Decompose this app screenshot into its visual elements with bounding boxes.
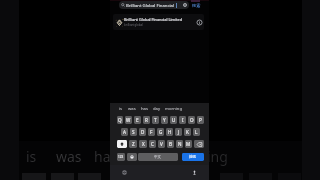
button[interactable]: B	[167, 140, 174, 148]
staticText: is	[119, 106, 123, 112]
button[interactable]: Z	[129, 140, 137, 148]
button[interactable]: morning	[164, 105, 184, 113]
button[interactable]: V	[158, 140, 165, 148]
button[interactable]: 搜索	[182, 153, 204, 161]
staticText: 搜索	[189, 155, 197, 160]
button[interactable]: O	[188, 116, 195, 124]
staticText: R	[145, 117, 148, 123]
staticText: 中文	[154, 155, 162, 160]
staticText: C	[151, 141, 154, 147]
button[interactable]: N	[176, 140, 183, 148]
staticText: A	[123, 129, 126, 135]
staticText: H	[168, 129, 172, 135]
button[interactable]: Shift	[117, 140, 127, 148]
button[interactable]: I	[179, 116, 186, 124]
staticText: brilliantglobal	[124, 23, 143, 27]
staticText: G	[159, 129, 163, 135]
button[interactable]: K	[184, 128, 191, 136]
button[interactable]: W	[125, 116, 132, 124]
button[interactable]: 123	[117, 153, 125, 161]
staticText: ing	[207, 147, 228, 166]
staticText: S	[132, 129, 135, 135]
staticText: Brilliant Global Financial	[126, 2, 175, 8]
button[interactable]: is	[118, 105, 124, 113]
staticText: V	[160, 141, 163, 147]
button[interactable]: Brilliant Global Financial Limited	[113, 14, 204, 30]
button[interactable]: J	[175, 128, 182, 136]
button[interactable]: Y	[161, 116, 168, 124]
staticText: X	[142, 141, 145, 147]
button[interactable]: Backspace	[194, 140, 204, 148]
button[interactable]: Clear search	[183, 3, 187, 7]
staticText: U	[172, 117, 176, 123]
staticText: is	[26, 147, 37, 166]
staticText: Q	[118, 117, 122, 123]
staticText: M	[186, 141, 191, 147]
button[interactable]: 搜索	[192, 3, 201, 8]
button[interactable]: M	[185, 140, 192, 148]
button[interactable]: Voice input	[191, 169, 197, 175]
staticText: K	[186, 129, 189, 135]
button[interactable]: T	[152, 116, 159, 124]
button[interactable]: has	[140, 105, 149, 113]
staticText: N	[178, 141, 182, 147]
staticText: O	[190, 117, 194, 123]
staticText: 123	[118, 155, 124, 159]
button[interactable]: H	[166, 128, 173, 136]
button[interactable]: Info	[196, 19, 203, 26]
staticText: F	[150, 129, 153, 135]
staticText: day	[153, 106, 161, 112]
staticText: E	[136, 117, 139, 123]
staticText: was	[56, 147, 82, 166]
staticText: was	[128, 106, 136, 112]
button[interactable]: G	[157, 128, 164, 136]
button[interactable]: was	[127, 105, 137, 113]
staticText: has	[141, 106, 148, 112]
button[interactable]: Q	[117, 116, 123, 124]
staticText: D	[141, 129, 145, 135]
button[interactable]: A	[121, 128, 128, 136]
button[interactable]: P	[197, 116, 204, 124]
staticText: ha	[94, 147, 111, 166]
button[interactable]: Emoji	[127, 153, 137, 161]
staticText: B	[169, 141, 172, 147]
staticText: Z	[132, 141, 135, 147]
button[interactable]: L	[193, 128, 200, 136]
staticText: T	[154, 117, 157, 123]
button[interactable]: F	[148, 128, 155, 136]
button[interactable]: Space	[138, 153, 178, 161]
staticText: J	[178, 129, 180, 135]
staticText: Y	[163, 117, 166, 123]
button[interactable]: S	[130, 128, 137, 136]
button[interactable]: day	[152, 105, 162, 113]
button[interactable]: U	[170, 116, 177, 124]
button[interactable]: D	[139, 128, 146, 136]
button[interactable]: Change keyboard	[121, 169, 127, 175]
staticText: P	[199, 117, 202, 123]
button[interactable]: R	[143, 116, 150, 124]
staticText: morning	[165, 106, 183, 112]
button[interactable]: X	[139, 140, 147, 148]
button[interactable]: C	[149, 140, 156, 148]
staticText: 搜索	[192, 3, 201, 8]
staticText: L	[195, 129, 198, 135]
button[interactable]: E	[134, 116, 141, 124]
staticText: Brilliant Global Financial Limited	[124, 17, 183, 22]
button[interactable]: Brilliant Global Financial	[119, 1, 189, 9]
staticText: W	[126, 117, 131, 123]
staticText: I	[182, 117, 184, 123]
